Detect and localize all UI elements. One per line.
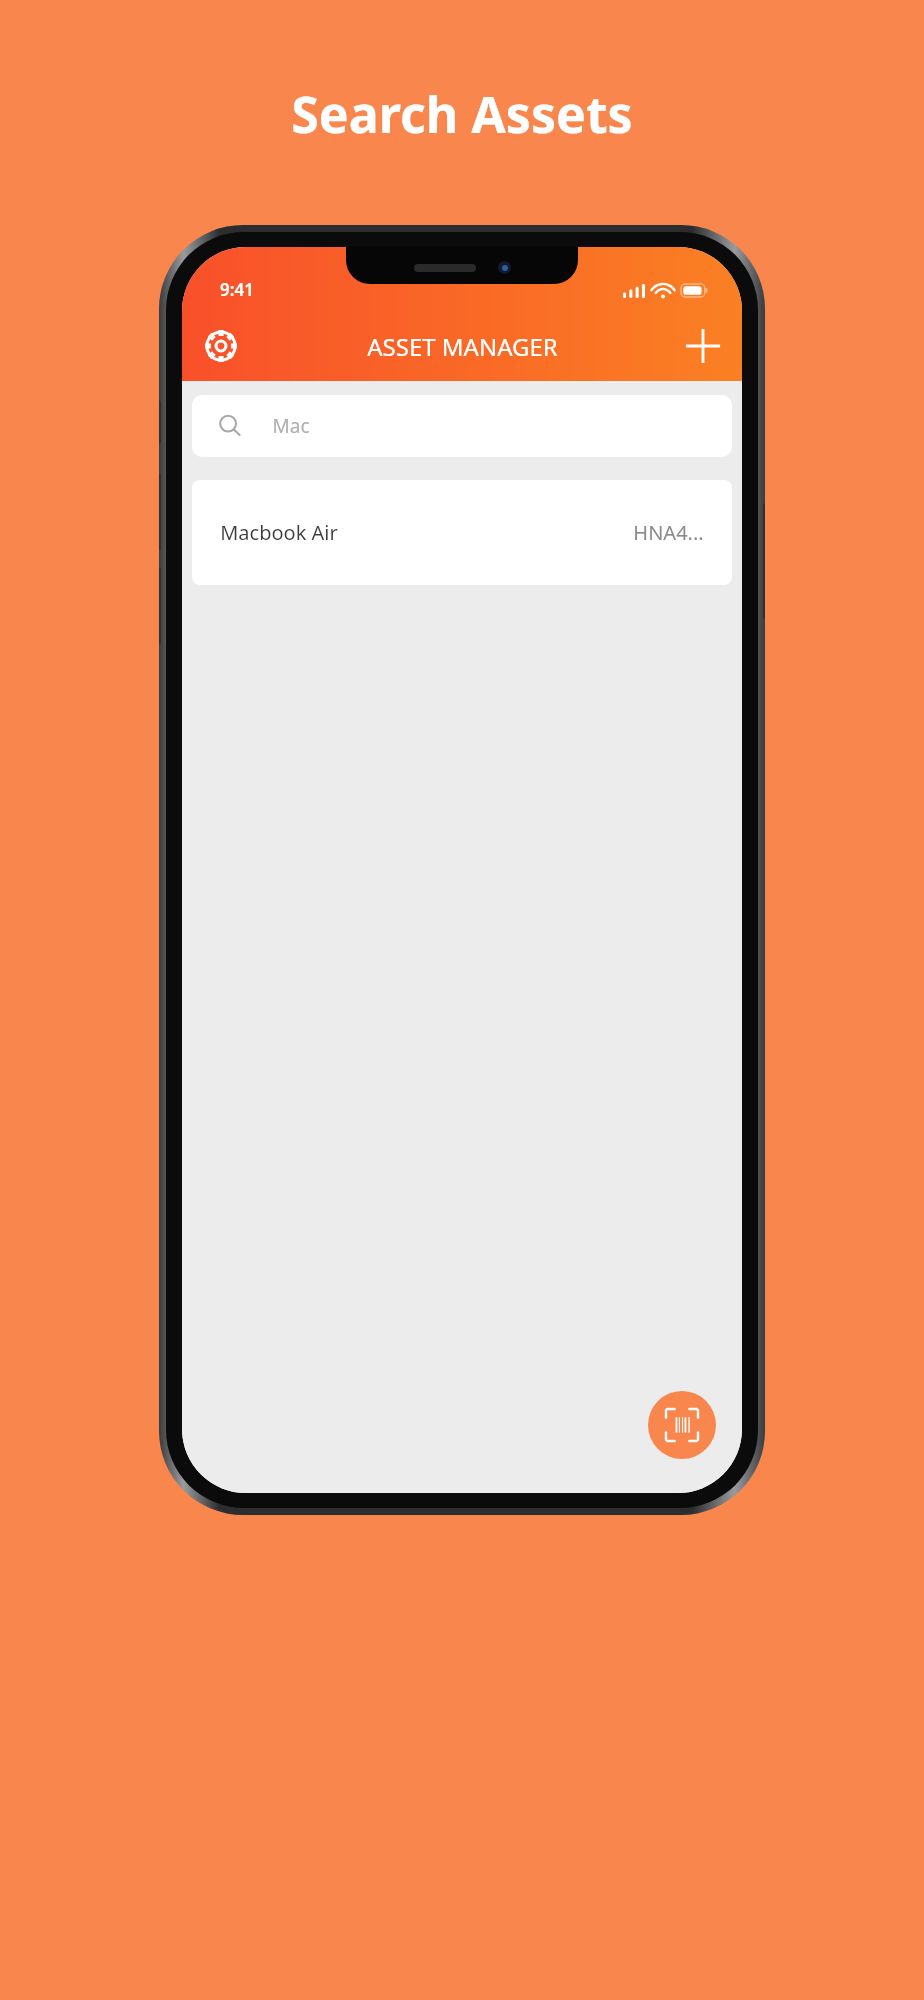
button[interactable]: Add asset <box>676 319 730 373</box>
staticText: 9:41 <box>220 278 254 301</box>
staticText: Macbook Air <box>220 519 338 546</box>
staticText: Search Assets <box>291 80 633 148</box>
button[interactable]: Mac <box>192 395 732 457</box>
staticText: ASSET MANAGER <box>367 330 558 363</box>
staticText: Mac <box>272 413 310 439</box>
button[interactable]: Macbook Air <box>192 480 732 585</box>
button[interactable]: Scan barcode <box>648 1391 716 1459</box>
staticText: HNA4... <box>633 519 704 546</box>
button[interactable]: Settings <box>194 319 248 373</box>
